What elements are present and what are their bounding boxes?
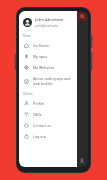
staticText: About coding app and web builder [33,76,71,86]
button[interactable]: Contact us [19,120,77,131]
button[interactable]: Log out [19,131,77,142]
staticText: Profile [33,101,44,106]
button[interactable]: Search [80,14,85,19]
button[interactable]: My Websites [19,62,77,73]
button[interactable]: Go Home [19,40,77,51]
button[interactable]: About coding app and web builder [19,73,77,89]
button[interactable]: John Abraham [19,15,77,30]
staticText: Go Home [33,43,49,48]
staticText: FAQs [33,112,42,117]
staticText: Contact us [33,123,51,128]
staticText: John Abraham [35,17,64,23]
button[interactable]: Account [79,158,85,164]
button[interactable]: FAQs [19,109,77,120]
button[interactable]: My apps [19,51,77,62]
staticText: Menu [23,34,32,38]
staticText: Others [23,92,33,96]
button[interactable]: Profile [19,98,77,109]
staticText: Log out [33,134,46,139]
staticText: john@mail.com [35,24,59,28]
staticText: My Websites [33,65,55,70]
staticText: My apps [33,54,48,59]
